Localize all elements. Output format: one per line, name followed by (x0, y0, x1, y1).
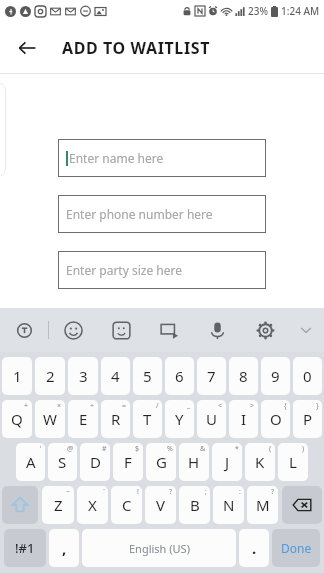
staticText: 23% (248, 4, 268, 18)
staticText: ÷ (90, 401, 95, 411)
staticText: K (255, 452, 265, 472)
staticText: 3 (79, 366, 88, 386)
button[interactable]: X (77, 486, 108, 524)
button[interactable]: Back (10, 31, 44, 65)
staticText: 4 (111, 366, 120, 386)
staticText: V (156, 495, 166, 515)
button[interactable]: Enter name here (58, 139, 266, 177)
staticText: 9 (271, 366, 280, 386)
button[interactable]: 1 (2, 357, 32, 395)
button[interactable]: M (247, 486, 278, 524)
staticText: % (167, 444, 173, 454)
staticText: 1 (13, 366, 22, 386)
staticText: English (US) (129, 541, 190, 556)
staticText: < (218, 401, 223, 411)
staticText: !#1 (15, 539, 35, 557)
staticText: E (79, 409, 88, 429)
staticText: ( (269, 444, 272, 454)
button[interactable]: N (213, 486, 244, 524)
button[interactable]: J (212, 443, 242, 481)
button[interactable]: E (68, 400, 98, 438)
staticText: ? (271, 487, 275, 497)
button[interactable]: S (48, 443, 77, 481)
button[interactable]: Voice input (193, 308, 241, 352)
button[interactable]: L (278, 443, 308, 481)
staticText: D (90, 452, 101, 472)
button[interactable]: Z (42, 486, 74, 524)
staticText: F (124, 452, 132, 472)
button[interactable]: 9 (261, 357, 290, 395)
button[interactable]: 4 (101, 357, 130, 395)
button[interactable]: T (133, 400, 162, 438)
button[interactable]: English (US) (82, 529, 236, 567)
staticText: ! (137, 487, 139, 497)
staticText: * (235, 444, 239, 454)
staticText: P (303, 409, 313, 429)
staticText: ? (169, 487, 173, 497)
staticText: M (256, 495, 270, 515)
staticText: 2 (46, 366, 55, 386)
button[interactable]: 5 (133, 357, 162, 395)
button[interactable]: 2 (35, 357, 65, 395)
button[interactable]: Done (272, 529, 320, 567)
button[interactable]: 7 (197, 357, 226, 395)
staticText: T (143, 409, 152, 429)
button[interactable]: GIF (145, 308, 193, 352)
button[interactable]: P (293, 400, 322, 438)
button[interactable]: Y (165, 400, 194, 438)
button[interactable]: Emoji (49, 308, 97, 352)
staticText: + (24, 401, 29, 411)
staticText: X (88, 495, 97, 515)
button[interactable]: Backspace (282, 486, 322, 524)
staticText: _ (187, 401, 191, 411)
staticText: 7 (207, 366, 216, 386)
staticText: , (62, 538, 67, 558)
button[interactable]: U (197, 400, 226, 438)
button[interactable]: Q (2, 400, 32, 438)
staticText: $ (135, 444, 140, 454)
button[interactable]: A (16, 443, 45, 481)
staticText: O (270, 409, 282, 429)
button[interactable]: Settings (241, 308, 289, 352)
button[interactable]: !#1 (4, 529, 46, 567)
button[interactable]: F (113, 443, 143, 481)
button[interactable]: Enter phone number here (58, 195, 266, 233)
staticText: ` (103, 487, 105, 497)
staticText: ) (302, 444, 305, 454)
staticText: = (122, 401, 127, 411)
staticText: H (188, 452, 200, 472)
button[interactable]: O (261, 400, 290, 438)
button[interactable]: Enter party size here (58, 251, 266, 289)
button[interactable]: D (80, 443, 110, 481)
staticText: 1:24 AM (281, 4, 320, 18)
staticText: R (111, 409, 121, 429)
button[interactable]: Translate (0, 308, 48, 352)
staticText: @ (67, 444, 74, 454)
staticText: ADD TO WAITLIST (62, 37, 210, 59)
button[interactable]: H (179, 443, 209, 481)
button[interactable]: . (239, 529, 269, 567)
button[interactable]: , (49, 529, 79, 567)
button[interactable]: 3 (68, 357, 98, 395)
staticText: B (190, 495, 200, 515)
staticText: # (102, 444, 107, 454)
button[interactable]: I (229, 400, 258, 438)
button[interactable]: Stickers (97, 308, 145, 352)
button[interactable]: V (145, 486, 176, 524)
button[interactable]: Collapse (289, 308, 323, 352)
button[interactable]: 0 (293, 357, 322, 395)
button[interactable]: C (111, 486, 142, 524)
staticText: Enter name here (69, 150, 164, 166)
button[interactable]: K (245, 443, 275, 481)
staticText: ' (40, 444, 42, 454)
button[interactable]: B (179, 486, 210, 524)
staticText: W (43, 409, 57, 429)
button[interactable]: G (146, 443, 176, 481)
button[interactable]: W (35, 400, 65, 438)
button[interactable]: 8 (229, 357, 258, 395)
button[interactable]: Shift (2, 486, 38, 524)
staticText: × (57, 401, 62, 411)
button[interactable]: 6 (165, 357, 194, 395)
staticText: C (122, 495, 132, 515)
button[interactable]: R (101, 400, 130, 438)
